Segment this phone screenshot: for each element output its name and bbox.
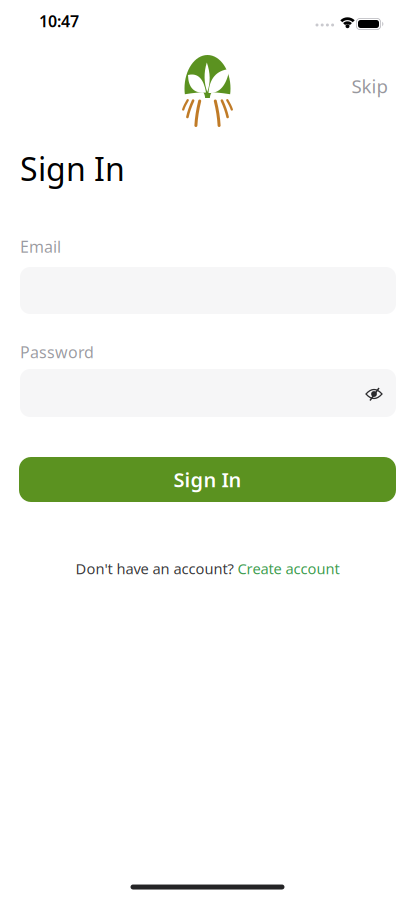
staticText: 10:47 <box>39 10 79 32</box>
staticText: Skip <box>351 74 387 98</box>
staticText: Password <box>20 341 94 363</box>
button[interactable]: Skip <box>345 68 393 104</box>
button[interactable]: Create account <box>237 559 339 578</box>
staticText: Don't have an account? <box>75 559 233 578</box>
staticText: Create account <box>237 559 339 578</box>
staticText: Email <box>20 236 61 257</box>
button[interactable]: Password <box>20 369 396 417</box>
button[interactable]: Show password <box>359 382 388 407</box>
staticText: Sign In <box>173 466 241 493</box>
button[interactable]: Sign In <box>19 457 396 502</box>
staticText: Sign In <box>20 147 125 190</box>
